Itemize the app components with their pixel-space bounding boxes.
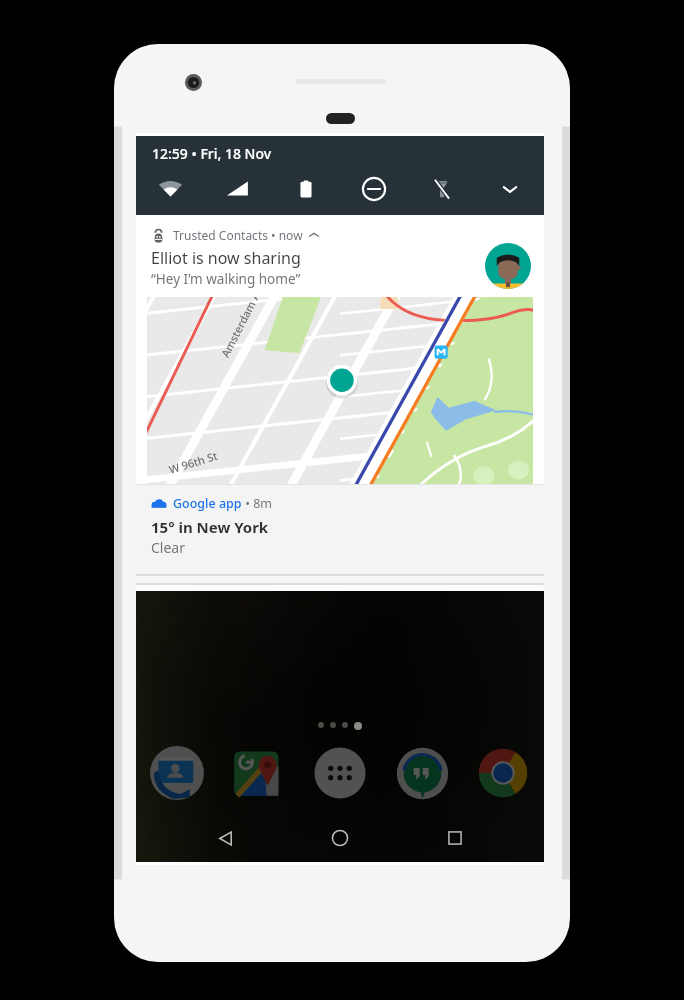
button[interactable]: Maps bbox=[228, 742, 290, 804]
staticText: Amsterdam A bbox=[217, 297, 263, 360]
staticText: Trusted Contacts • now bbox=[173, 227, 303, 243]
staticText: Google app bbox=[173, 495, 242, 512]
button[interactable]: Mobile signal bbox=[204, 168, 272, 210]
button[interactable]: Recents bbox=[429, 814, 481, 862]
button[interactable]: Wi-Fi bbox=[136, 168, 204, 210]
button[interactable]: Google app bbox=[136, 485, 544, 574]
button[interactable]: Battery bbox=[272, 168, 340, 210]
staticText: • 8m bbox=[242, 495, 273, 512]
staticText: “Hey I’m walking home” bbox=[151, 270, 301, 288]
button[interactable]: Flashlight off bbox=[408, 168, 476, 210]
staticText: Elliot is now sharing bbox=[151, 247, 301, 269]
button[interactable]: Home bbox=[314, 814, 366, 862]
button[interactable]: Phone bbox=[146, 742, 208, 804]
button[interactable]: Do not disturb bbox=[340, 168, 408, 210]
button[interactable]: Expand quick settings bbox=[476, 168, 544, 210]
staticText: W 96th St bbox=[167, 448, 220, 477]
button[interactable]: Hangouts bbox=[391, 742, 453, 804]
staticText: 15° in New York bbox=[151, 517, 269, 537]
button[interactable]: Chrome bbox=[472, 742, 534, 804]
button[interactable]: All apps bbox=[309, 742, 371, 804]
staticText: Clear bbox=[151, 538, 185, 557]
button[interactable]: Back bbox=[199, 814, 251, 862]
staticText: 12:59 • Fri, 18 Nov bbox=[152, 144, 272, 163]
button[interactable]: Trusted Contacts • now bbox=[136, 215, 544, 484]
